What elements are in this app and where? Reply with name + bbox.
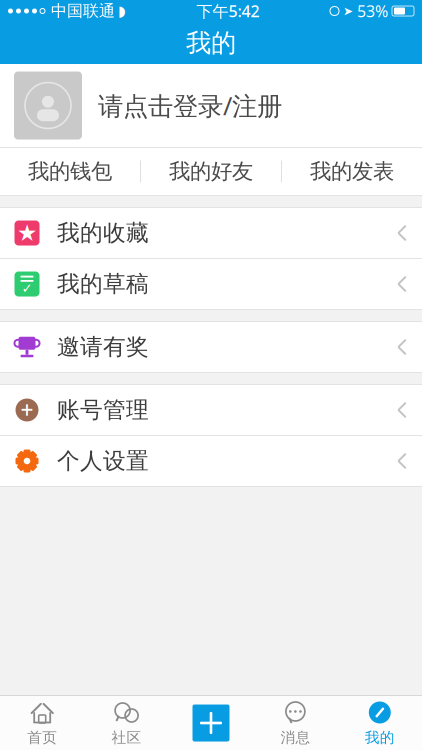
staticText: ◗ xyxy=(118,3,126,19)
button[interactable]: 我的发表 xyxy=(282,148,422,195)
staticText: ★ xyxy=(17,220,37,246)
button[interactable]: 个人设置 xyxy=(0,436,422,487)
button[interactable]: 我的钱包 xyxy=(0,148,140,195)
staticText: ✓ xyxy=(21,281,32,296)
button[interactable]: ★ xyxy=(0,208,422,259)
staticText: 下午5:42 xyxy=(196,0,259,22)
button[interactable]: 请点击登录/注册 xyxy=(0,64,422,147)
staticText: 社区 xyxy=(112,728,142,746)
staticText: 我的发表 xyxy=(310,158,394,185)
staticText: 首页 xyxy=(27,728,57,746)
staticText: 我的 xyxy=(365,728,395,746)
button[interactable]: 我的好友 xyxy=(141,148,281,195)
staticText: 我的钱包 xyxy=(28,158,112,185)
button[interactable]: 首页 xyxy=(0,696,84,750)
button[interactable]: 邀请有奖 xyxy=(0,322,422,373)
staticText: + xyxy=(20,395,33,425)
button[interactable]: 我的 xyxy=(338,696,422,750)
button[interactable]: 消息 xyxy=(253,696,338,750)
staticText: 个人设置 xyxy=(57,447,149,475)
staticText: 我的好友 xyxy=(169,158,253,185)
staticText: 我的收藏 xyxy=(57,219,149,247)
staticText: 邀请有奖 xyxy=(57,333,149,361)
button[interactable]: ✓ xyxy=(0,259,422,310)
staticText: 53% xyxy=(357,0,388,22)
button[interactable]: + xyxy=(0,385,422,436)
staticText: ➤ xyxy=(343,4,353,18)
staticText: 我的草稿 xyxy=(57,270,149,298)
staticText: 中国联通 xyxy=(51,1,115,21)
staticText: 请点击登录/注册 xyxy=(98,89,282,122)
staticText: 账号管理 xyxy=(57,396,149,424)
staticText: 我的 xyxy=(186,27,236,58)
button[interactable] xyxy=(169,696,253,750)
button[interactable]: 社区 xyxy=(84,696,169,750)
staticText: 消息 xyxy=(280,728,310,746)
